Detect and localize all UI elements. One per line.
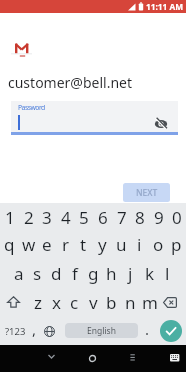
- staticText: i: [137, 233, 142, 256]
- button[interactable]: i: [130, 230, 149, 258]
- button[interactable]: [11, 101, 178, 133]
- button[interactable]: d: [47, 259, 66, 287]
- button[interactable]: h: [102, 259, 121, 287]
- button[interactable]: w: [19, 230, 38, 258]
- staticText: r: [62, 233, 70, 256]
- button[interactable]: English: [65, 323, 138, 338]
- button[interactable]: [83, 349, 102, 368]
- button[interactable]: ?123: [2, 317, 28, 345]
- staticText: 7: [117, 206, 127, 229]
- staticText: x: [52, 291, 61, 314]
- staticText: g: [88, 262, 99, 285]
- staticText: customer@bell.net: [8, 73, 133, 92]
- button[interactable]: n: [121, 288, 140, 316]
- button[interactable]: 4: [56, 203, 75, 231]
- button[interactable]: g: [84, 259, 103, 287]
- button[interactable]: p: [167, 230, 186, 258]
- staticText: w: [22, 233, 36, 256]
- staticText: s: [33, 262, 42, 285]
- staticText: n: [125, 291, 136, 314]
- button[interactable]: .: [140, 315, 154, 343]
- button[interactable]: [159, 288, 181, 316]
- staticText: 0: [172, 206, 182, 229]
- button[interactable]: y: [93, 230, 112, 258]
- button[interactable]: [152, 115, 170, 133]
- staticText: z: [34, 291, 42, 314]
- staticText: p: [171, 233, 182, 256]
- button[interactable]: 2: [19, 203, 38, 231]
- staticText: .: [145, 319, 150, 339]
- button[interactable]: [123, 348, 142, 367]
- staticText: t: [80, 233, 87, 256]
- staticText: b: [106, 291, 117, 314]
- button[interactable]: [160, 320, 182, 342]
- staticText: ?123: [5, 325, 26, 338]
- staticText: h: [106, 262, 117, 285]
- staticText: k: [145, 262, 155, 285]
- staticText: 11:11 AM: [146, 1, 184, 12]
- staticText: j: [128, 262, 133, 285]
- button[interactable]: c: [65, 288, 84, 316]
- button[interactable]: 6: [93, 203, 112, 231]
- staticText: 2: [24, 206, 34, 229]
- staticText: m: [142, 291, 158, 314]
- button[interactable]: ,: [27, 315, 41, 343]
- staticText: English: [87, 325, 116, 337]
- button[interactable]: a: [9, 259, 28, 287]
- staticText: 5: [79, 206, 89, 229]
- staticText: o: [153, 233, 164, 256]
- button[interactable]: 3: [37, 203, 56, 231]
- button[interactable]: [166, 350, 183, 365]
- staticText: f: [72, 262, 78, 285]
- button[interactable]: 8: [130, 203, 149, 231]
- button[interactable]: [3, 288, 23, 316]
- button[interactable]: NEXT: [123, 183, 170, 202]
- button[interactable]: 7: [112, 203, 131, 231]
- staticText: ,: [32, 319, 37, 339]
- button[interactable]: v: [84, 288, 103, 316]
- button[interactable]: x: [47, 288, 66, 316]
- button[interactable]: 1: [0, 203, 19, 231]
- button[interactable]: k: [140, 259, 159, 287]
- staticText: u: [116, 233, 127, 256]
- staticText: v: [89, 291, 98, 314]
- staticText: 4: [61, 206, 71, 229]
- button[interactable]: m: [140, 288, 159, 316]
- button[interactable]: r: [56, 230, 75, 258]
- staticText: 9: [154, 206, 164, 229]
- button[interactable]: 9: [149, 203, 168, 231]
- button[interactable]: l: [158, 259, 177, 287]
- button[interactable]: o: [149, 230, 168, 258]
- button[interactable]: [42, 348, 61, 367]
- button[interactable]: u: [112, 230, 131, 258]
- button[interactable]: [41, 317, 57, 345]
- button[interactable]: 0: [167, 203, 186, 231]
- button[interactable]: b: [102, 288, 121, 316]
- staticText: d: [51, 262, 62, 285]
- staticText: 3: [42, 206, 52, 229]
- staticText: 8: [135, 206, 145, 229]
- button[interactable]: e: [37, 230, 56, 258]
- button[interactable]: t: [74, 230, 93, 258]
- staticText: y: [98, 233, 107, 256]
- button[interactable]: f: [65, 259, 84, 287]
- button[interactable]: q: [0, 230, 19, 258]
- staticText: a: [14, 262, 24, 285]
- staticText: 1: [5, 206, 15, 229]
- staticText: c: [70, 291, 79, 314]
- staticText: Password: [18, 103, 45, 112]
- staticText: l: [165, 262, 170, 285]
- staticText: e: [42, 233, 52, 256]
- button[interactable]: s: [28, 259, 47, 287]
- staticText: NEXT: [136, 187, 158, 199]
- staticText: 6: [98, 206, 108, 229]
- button[interactable]: 5: [74, 203, 93, 231]
- button[interactable]: z: [28, 288, 47, 316]
- staticText: q: [4, 233, 15, 256]
- button[interactable]: j: [121, 259, 140, 287]
